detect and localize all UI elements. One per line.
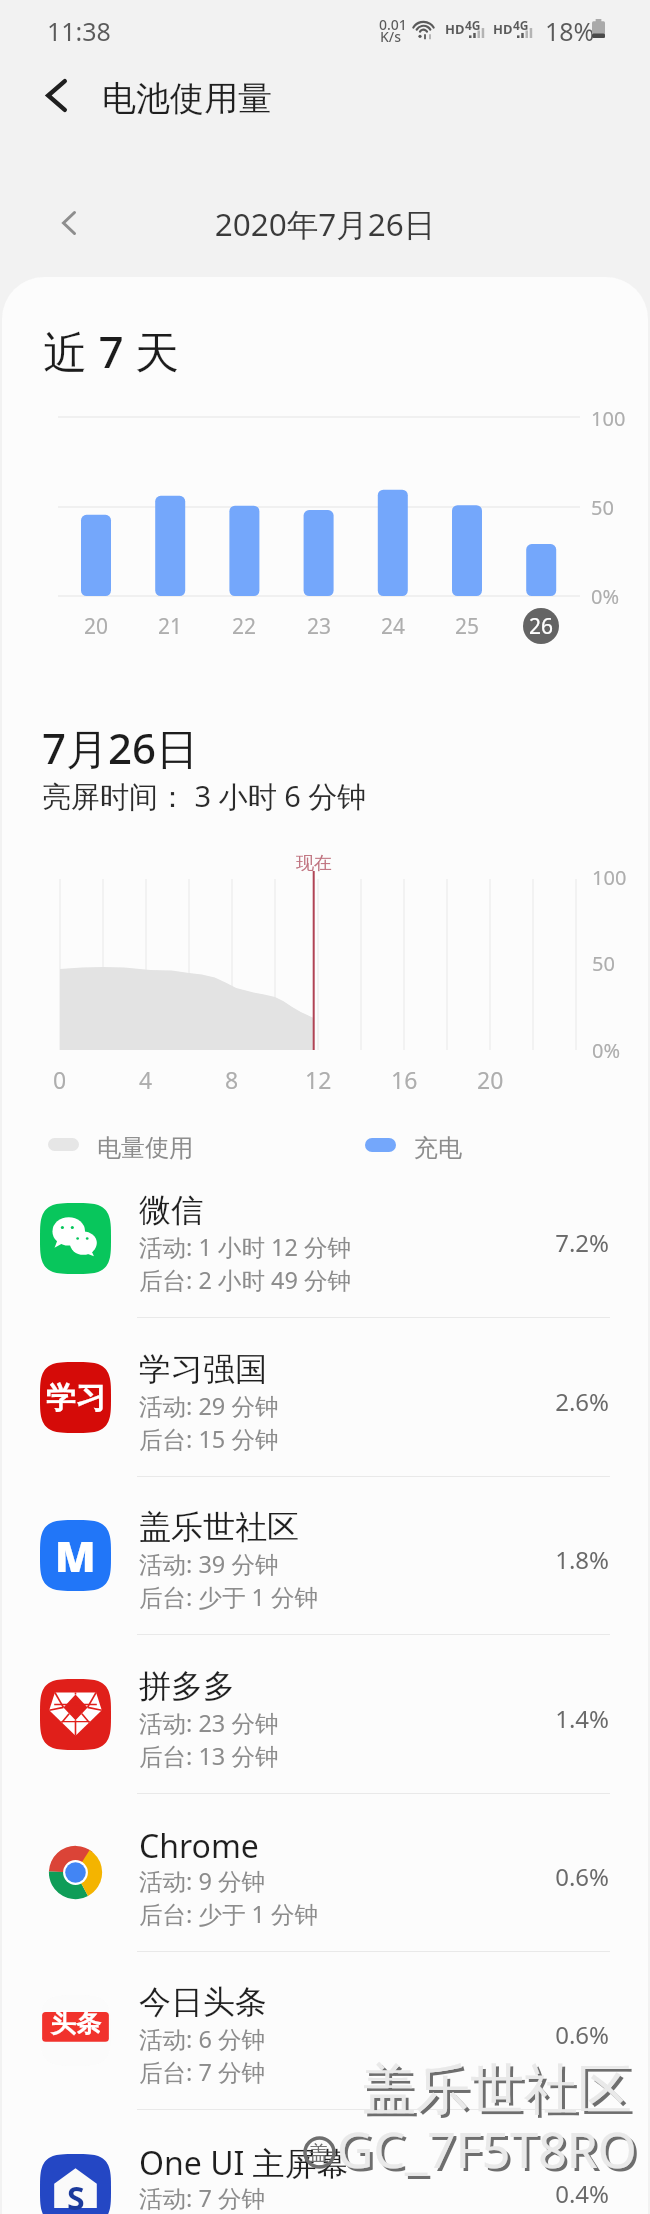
staticText: 电量使用 <box>97 1133 193 1163</box>
staticText: 微信 <box>139 1190 203 1230</box>
staticText: 4G <box>465 17 481 33</box>
staticText: 50 <box>591 494 614 521</box>
staticText: 活动: 29 分钟 <box>139 1390 279 1422</box>
button[interactable]: 24 <box>369 602 417 650</box>
staticText: 0.6% <box>499 2018 609 2051</box>
staticText: 现在 <box>296 852 332 875</box>
staticText: 后台: 2 小时 49 分钟 <box>139 1264 352 1296</box>
staticText: 后台: 少于 1 分钟 <box>139 1898 319 1930</box>
staticText: GC_7F5T8RO <box>340 2118 640 2186</box>
staticText: 活动: 9 分钟 <box>139 1865 265 1897</box>
button[interactable]: 拼多多 <box>2 1635 648 1793</box>
button[interactable]: 头条 <box>2 1951 648 2109</box>
staticText: 盖乐世社区 <box>139 1507 299 1547</box>
staticText: S <box>67 2176 85 2214</box>
staticText: HD <box>493 20 513 38</box>
staticText: 后台: 13 分钟 <box>139 1740 279 1772</box>
button[interactable]: Back <box>0 58 100 138</box>
staticText: M <box>55 1527 96 1584</box>
staticText: 1.4% <box>499 1702 609 1735</box>
staticText: 学习 <box>46 1379 106 1417</box>
staticText: 头条 <box>51 2008 101 2039</box>
staticText: 盖乐世社区 <box>365 2059 635 2127</box>
staticText: 电池使用量 <box>102 77 272 120</box>
staticText: 12 <box>305 1064 332 1095</box>
staticText: 盖 <box>309 2141 329 2166</box>
button[interactable]: 微信 <box>2 1159 648 1317</box>
staticText: 20 <box>84 612 109 641</box>
staticText: 活动: 6 分钟 <box>139 2023 265 2055</box>
button[interactable]: 学习 <box>2 1318 648 1476</box>
staticText: 0% <box>592 1037 621 1064</box>
button[interactable]: Previous day <box>42 179 100 237</box>
button[interactable]: 20 <box>72 602 120 650</box>
staticText: 0.4% <box>499 2177 609 2210</box>
staticText: Chrome <box>139 1824 259 1868</box>
staticText: 活动: 39 分钟 <box>139 1548 279 1580</box>
staticText: 18% <box>545 14 595 48</box>
staticText: 24 <box>381 612 406 641</box>
staticText: 1.8% <box>499 1543 609 1576</box>
staticText: HD <box>445 20 465 38</box>
staticText: 21 <box>158 612 183 641</box>
button[interactable]: 21 <box>146 602 194 650</box>
staticText: 2.6% <box>499 1385 609 1418</box>
button[interactable]: M <box>2 1476 648 1634</box>
staticText: 8 <box>225 1064 239 1095</box>
staticText: 近 7 天 <box>43 321 180 381</box>
staticText: 4G <box>513 17 529 33</box>
staticText: One UI 主屏幕 <box>139 2141 349 2185</box>
staticText: 后台: 7 分钟 <box>139 2056 265 2088</box>
staticText: 活动: 1 小时 12 分钟 <box>139 1231 352 1263</box>
staticText: 活动: 23 分钟 <box>139 1707 279 1739</box>
staticText: 2020年7月26日 <box>0 202 650 245</box>
staticText: 后台: 15 分钟 <box>139 1423 279 1455</box>
staticText: 11:38 <box>47 14 111 48</box>
button[interactable]: Chrome <box>2 1793 648 1951</box>
staticText: 0.6% <box>499 1860 609 1893</box>
staticText: 4 <box>139 1064 153 1095</box>
staticText: 22 <box>232 612 257 641</box>
staticText: 后台: 少于 1 分钟 <box>139 1581 319 1613</box>
staticText: 100 <box>591 405 626 432</box>
staticText: 25 <box>455 612 480 641</box>
staticText: 0.01 <box>379 15 407 34</box>
staticText: 今日头条 <box>139 1982 267 2022</box>
staticText: 拼多多 <box>139 1666 235 1706</box>
staticText: 活动: 7 分钟 <box>139 2182 265 2214</box>
staticText: 100 <box>592 864 627 891</box>
staticText: 23 <box>307 612 332 641</box>
staticText: 充电 <box>414 1133 462 1163</box>
button[interactable]: 23 <box>295 602 343 650</box>
staticText: K/s <box>380 27 402 46</box>
staticText: 16 <box>391 1064 418 1095</box>
staticText: 0 <box>53 1064 67 1095</box>
button[interactable]: S <box>2 2110 648 2214</box>
staticText: 亮屏时间： 3 小时 6 分钟 <box>42 776 367 816</box>
staticText: 7.2% <box>499 1226 609 1259</box>
button[interactable]: 25 <box>443 602 491 650</box>
button[interactable]: 26 <box>517 602 565 650</box>
staticText: 50 <box>592 950 615 977</box>
button[interactable]: 22 <box>220 602 268 650</box>
staticText: 7月26日 <box>42 719 199 776</box>
staticText: GC_7F5T8RO <box>337 2115 637 2183</box>
staticText: 0% <box>591 583 620 610</box>
staticText: 盖乐世社区 <box>362 2056 632 2124</box>
staticText: 26 <box>529 612 554 641</box>
staticText: 学习强国 <box>139 1349 267 1389</box>
staticText: 20 <box>477 1064 504 1095</box>
